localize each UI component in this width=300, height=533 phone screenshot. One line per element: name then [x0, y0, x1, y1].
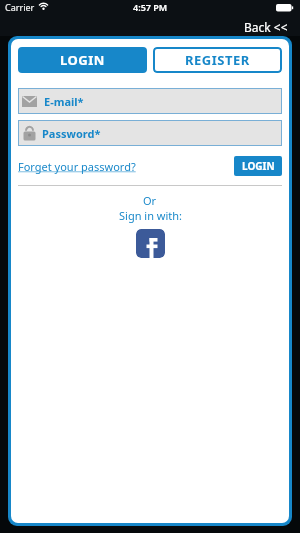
- staticText: Sign in with:: [119, 208, 182, 223]
- staticText: Password*: [42, 126, 101, 141]
- button[interactable]: REGISTER: [153, 47, 282, 73]
- staticText: LOGIN: [242, 159, 275, 173]
- button[interactable]: LOGIN: [18, 47, 147, 73]
- staticText: Carrier: [5, 1, 35, 13]
- button[interactable]: Password*: [18, 120, 282, 146]
- button[interactable]: E-mail*: [18, 88, 282, 114]
- button[interactable]: Back <<: [244, 19, 288, 35]
- staticText: E-mail*: [44, 94, 84, 109]
- staticText: LOGIN: [60, 51, 105, 69]
- button[interactable]: LOGIN: [234, 156, 282, 176]
- staticText: REGISTER: [185, 51, 250, 69]
- staticText: Or: [143, 193, 157, 208]
- staticText: 4:57 PM: [133, 1, 168, 13]
- button[interactable]: Forget your password?: [18, 159, 136, 174]
- button[interactable]: [136, 229, 165, 258]
